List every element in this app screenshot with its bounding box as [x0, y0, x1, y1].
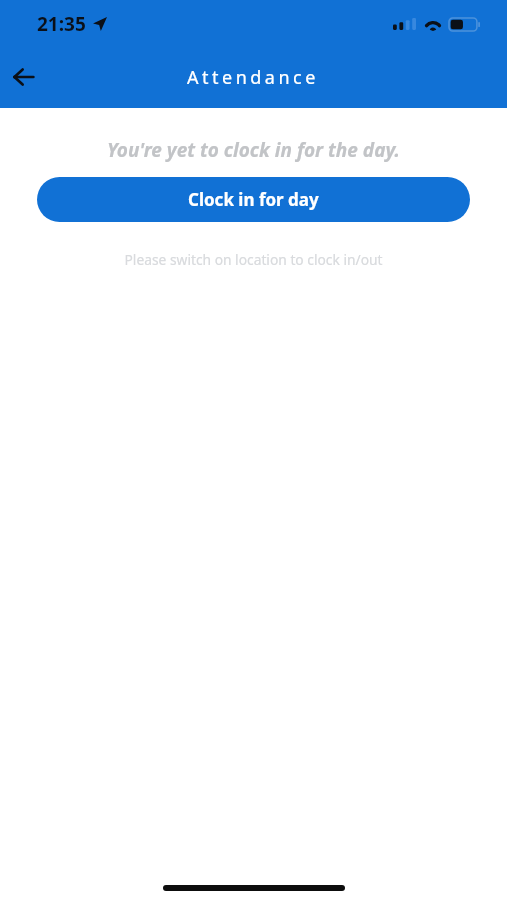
staticText: Attendance [187, 65, 319, 90]
button[interactable]: Back [0, 54, 46, 100]
button[interactable]: Clock in for day [37, 177, 470, 222]
staticText: 21:35 [37, 11, 86, 37]
staticText: Clock in for day [188, 188, 319, 211]
staticText: You're yet to clock in for the day. [0, 137, 507, 163]
staticText: Please switch on location to clock in/ou… [0, 250, 507, 269]
